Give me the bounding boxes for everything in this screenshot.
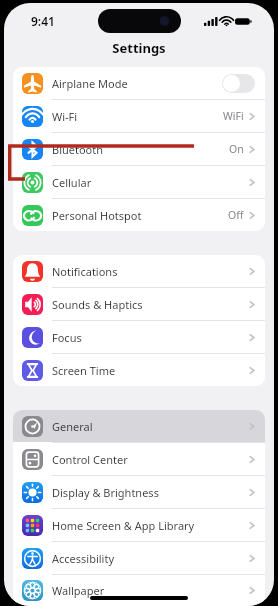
staticText: Wallpaper	[52, 583, 105, 598]
staticText: Display & Brightness	[52, 485, 159, 500]
staticText: General	[52, 419, 93, 434]
button[interactable]: Bluetooth	[13, 133, 265, 165]
button[interactable]: Airplane Mode	[13, 67, 265, 99]
staticText: Notifications	[52, 264, 118, 279]
button[interactable]: Personal Hotspot	[13, 199, 265, 231]
staticText: Focus	[52, 330, 82, 345]
button[interactable]: Focus	[13, 321, 265, 353]
staticText: Settings	[112, 39, 166, 57]
staticText: Sounds & Haptics	[52, 297, 143, 312]
button[interactable]: Display & Brightness	[13, 476, 265, 508]
button[interactable]: Screen Time	[13, 354, 265, 386]
staticText: On	[229, 142, 244, 156]
staticText: Off	[228, 208, 244, 222]
button[interactable]: Wi-Fi	[13, 100, 265, 132]
button[interactable]: Accessibility	[13, 542, 265, 574]
staticText: Wi-Fi	[52, 109, 78, 124]
button[interactable]: Notifications	[13, 255, 265, 287]
button[interactable]: Cellular	[13, 166, 265, 198]
button[interactable]: Control Center	[13, 443, 265, 475]
staticText: Control Center	[52, 452, 128, 467]
button[interactable]: Wallpaper	[13, 575, 265, 606]
staticText: Accessibility	[52, 551, 115, 566]
button[interactable]: Airplane Mode toggle, off	[222, 74, 255, 93]
staticText: Home Screen & App Library	[52, 518, 195, 533]
staticText: Cellular	[52, 175, 92, 190]
staticText: 9:41	[31, 13, 55, 29]
staticText: WiFi	[223, 109, 244, 123]
staticText: Personal Hotspot	[52, 208, 142, 223]
button[interactable]: Home Screen & App Library	[13, 509, 265, 541]
button[interactable]: Sounds & Haptics	[13, 288, 265, 320]
staticText: Bluetooth	[52, 142, 104, 157]
staticText: Airplane Mode	[52, 76, 128, 91]
staticText: Screen Time	[52, 363, 116, 378]
button[interactable]: General	[13, 410, 265, 442]
